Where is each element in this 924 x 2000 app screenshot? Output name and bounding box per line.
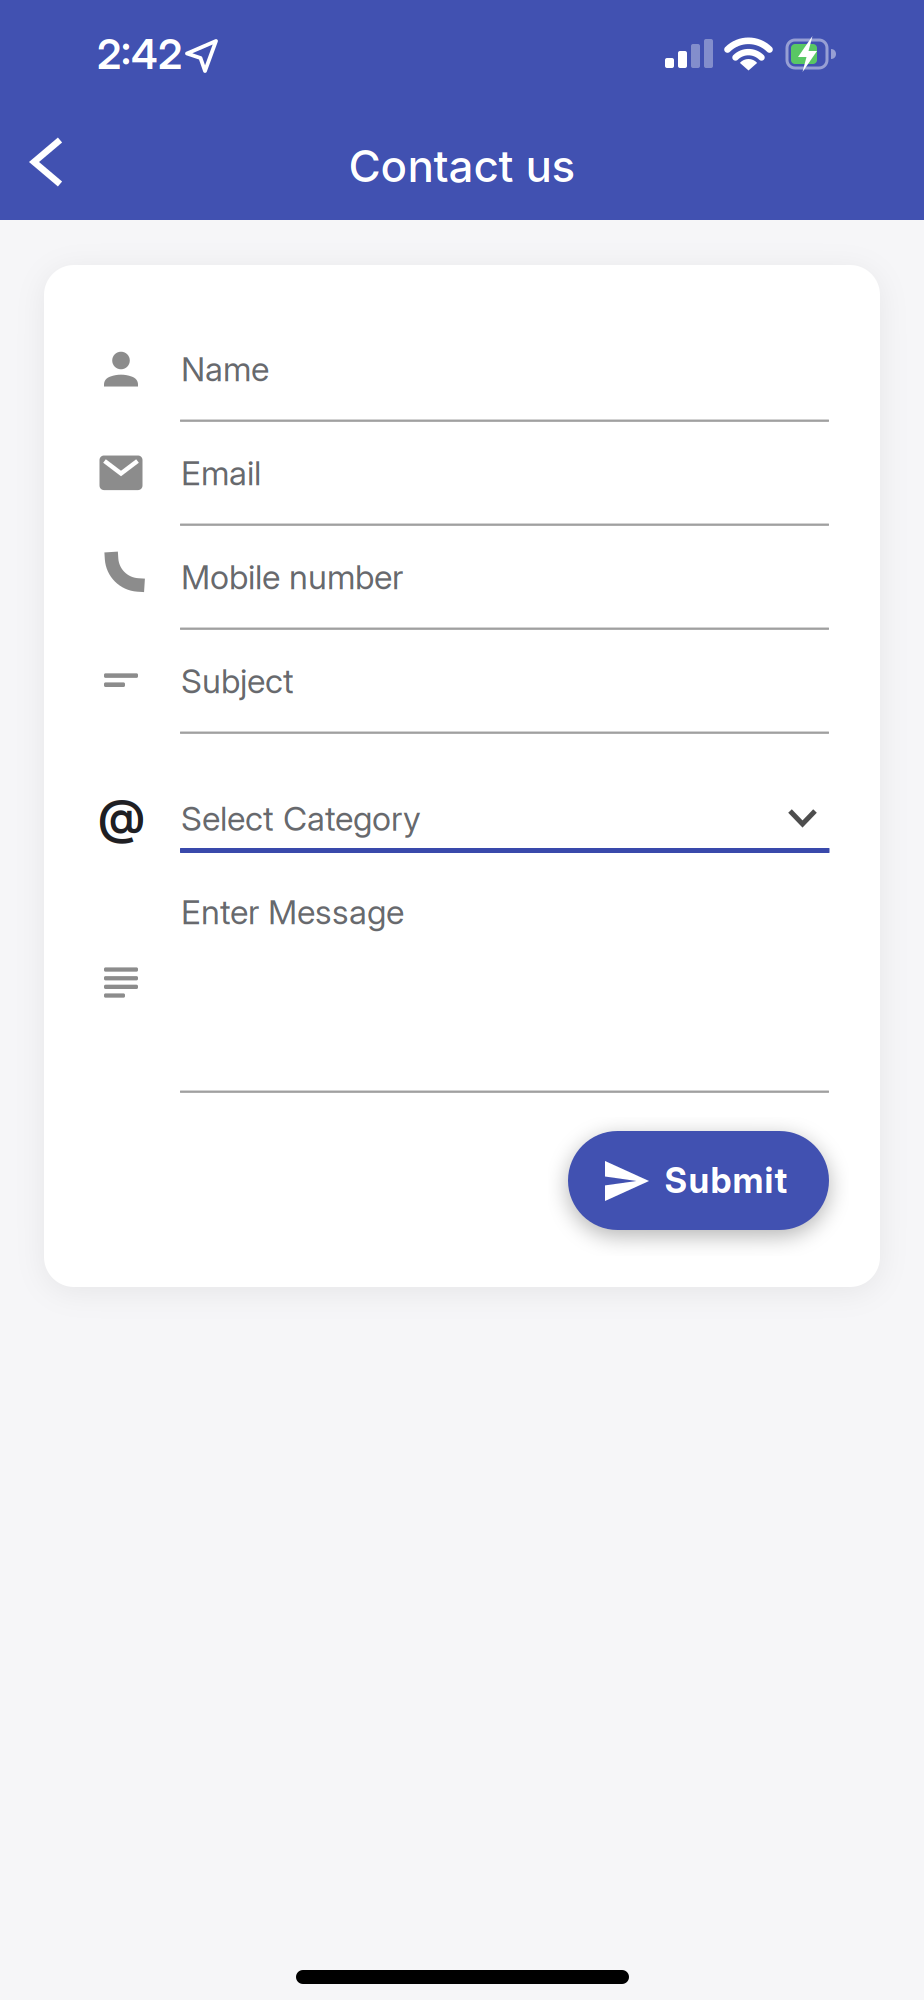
button[interactable]: Name — [180, 334, 829, 404]
staticText: Subject — [181, 661, 294, 701]
button[interactable]: Submit — [568, 1131, 829, 1230]
button[interactable]: Mobile number — [180, 542, 829, 612]
button[interactable]: Back — [18, 130, 78, 194]
staticText: 2:42 — [97, 29, 182, 79]
staticText: Mobile number — [181, 557, 403, 597]
button[interactable]: Email — [180, 438, 829, 508]
staticText: Email — [181, 453, 261, 493]
staticText: Name — [181, 349, 269, 389]
staticText: @ — [97, 787, 145, 846]
button[interactable]: Enter Message — [180, 892, 829, 1092]
staticText: Select Category — [181, 798, 421, 839]
staticText: Submit — [664, 1159, 787, 1201]
button[interactable]: Subject — [180, 646, 829, 716]
button[interactable]: Select Category — [180, 783, 829, 853]
staticText: Contact us — [348, 139, 575, 193]
staticText: Enter Message — [181, 892, 404, 932]
